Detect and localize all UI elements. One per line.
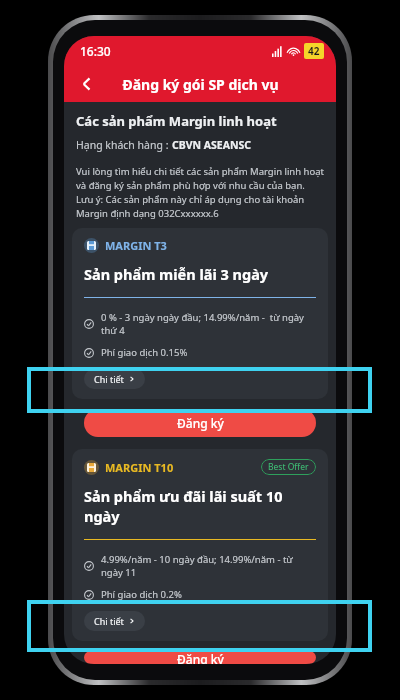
- staticText: 0 % - 3 ngày ngày đầu; 14.99%/năm - từ n…: [101, 311, 316, 337]
- button[interactable]: Chi tiết: [84, 611, 145, 631]
- button[interactable]: MARGIN T10: [72, 449, 328, 641]
- staticText: Phí giao dịch 0.2%: [101, 588, 182, 601]
- staticText: Best Offer: [268, 461, 309, 473]
- staticText: MARGIN T10: [105, 460, 174, 475]
- staticText: Đăng ký: [177, 651, 224, 664]
- button[interactable]: MARGIN T3: [72, 228, 328, 399]
- staticText: Vui lòng tìm hiểu chi tiết các sản phẩm …: [76, 165, 324, 220]
- staticText: 16:30: [80, 43, 111, 59]
- staticText: Đăng ký gói SP dịch vụ: [122, 75, 279, 94]
- staticText: 4.99%/năm - 10 ngày đầu; 14.99%/năm - từ…: [101, 553, 316, 579]
- staticText: Chi tiết: [94, 615, 124, 627]
- staticText: MARGIN T3: [105, 238, 167, 253]
- button[interactable]: Back: [70, 67, 104, 101]
- button[interactable]: Đăng ký: [84, 651, 316, 664]
- button[interactable]: Chi tiết: [84, 369, 145, 389]
- staticText: Đăng ký: [177, 415, 224, 431]
- staticText: Các sản phẩm Margin linh hoạt: [76, 112, 277, 130]
- staticText: Phí giao dịch 0.15%: [101, 346, 188, 359]
- staticText: Chi tiết: [94, 373, 124, 385]
- staticText: Sản phẩm ưu đãi lãi suất 10 ngày: [84, 486, 316, 526]
- staticText: 42: [308, 44, 320, 58]
- staticText: CBVN ASEANSC: [172, 138, 252, 152]
- staticText: Hạng khách hàng :: [76, 138, 172, 152]
- button[interactable]: Đăng ký: [84, 409, 316, 437]
- staticText: Sản phẩm miễn lãi 3 ngày: [84, 264, 269, 284]
